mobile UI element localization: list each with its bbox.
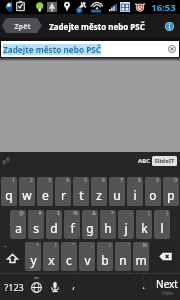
staticText: u [113,187,121,203]
staticText: n [119,252,127,268]
staticText: y [30,252,37,268]
button[interactable]: Zadejte město nebo PSČ [1,41,179,57]
staticText: e [42,187,49,203]
button[interactable]: Zpět [2,18,42,33]
button[interactable]: " [61,242,77,271]
staticText: c [66,252,72,268]
button[interactable]: Shift [1,242,23,271]
staticText: 4 [66,177,69,184]
button[interactable]: 1 [1,177,17,206]
staticText: 7 [120,177,123,184]
staticText: i [133,187,137,203]
staticText: 5 [84,177,87,184]
staticText: % [142,242,147,249]
button[interactable]: Period [136,273,150,300]
staticText: t [79,187,84,203]
button[interactable]: % [133,242,149,271]
staticText: Next [156,277,178,291]
staticText: # [38,210,42,217]
staticText: 0 [174,177,177,184]
staticText: co [34,275,39,280]
staticText: m [135,252,147,268]
button[interactable]: 3 [37,177,53,206]
staticText: s [33,220,39,236]
staticText: 9 [156,177,159,184]
button[interactable]: ) [154,210,170,239]
staticText: d [50,220,58,236]
button[interactable]: Clear text [167,44,177,54]
staticText: 8 [138,177,141,184]
staticText: Zadejte město nebo PSČ [3,44,101,55]
staticText: a [15,220,22,236]
button[interactable]: 0 [163,177,179,206]
button[interactable]: 5 [73,177,89,206]
button[interactable]: 2 [19,177,35,206]
button[interactable]: Comma [65,273,82,300]
staticText: SlideIT [154,157,175,165]
staticText: ' [127,242,129,249]
button[interactable]: Next [152,273,180,300]
button[interactable]: - [118,210,134,239]
button[interactable]: ' [115,242,131,271]
staticText: " [72,242,75,249]
button[interactable]: ! [43,242,59,271]
staticText: ( [148,210,150,217]
staticText: 16:53 [151,1,176,14]
staticText: @ [19,210,24,217]
button[interactable]: $ [46,210,62,239]
button[interactable]: Info [162,19,176,33]
button[interactable]: Backspace [151,242,179,271]
staticText: : [77,274,79,279]
button[interactable]: 7 [109,177,125,206]
staticText: + [36,242,39,249]
button[interactable]: 4 [55,177,71,206]
button[interactable]: Symbols [1,273,26,300]
staticText: - [130,210,132,217]
staticText: g [86,220,94,236]
staticText: ABC [138,157,150,165]
staticText: $ [57,210,60,217]
staticText: . [142,278,145,292]
button[interactable]: % [64,210,80,239]
staticText: q [5,187,13,203]
button[interactable]: * [100,210,116,239]
staticText: x [48,252,55,268]
staticText: Zpět [14,21,31,31]
button[interactable]: # [28,210,44,239]
staticText: ?123 [4,281,24,293]
staticText: o [149,187,157,203]
staticText: Hide [162,290,173,297]
button[interactable]: Voice input [46,273,63,300]
button[interactable]: Change language [28,273,44,300]
button[interactable]: + [25,242,41,271]
staticText: * [111,210,114,217]
button[interactable]: ( [136,210,152,239]
staticText: 1 [12,177,15,184]
staticText: ) [166,210,168,217]
button[interactable]: 9 [145,177,161,206]
staticText: 3 [48,177,51,184]
staticText: h [104,220,112,236]
staticText: l [160,220,164,236]
button[interactable]: , [79,242,95,271]
staticText: , [72,278,75,292]
button[interactable]: Space [84,273,134,300]
staticText: % [73,210,78,217]
staticText: ! [55,242,57,249]
staticText: / [109,242,111,249]
button[interactable]: / [97,242,113,271]
staticText: Zadejte město nebo PSČ [49,21,145,32]
staticText: b [101,252,109,268]
button[interactable]: & [82,210,98,239]
staticText: ; [142,274,144,279]
button[interactable]: 6 [91,177,107,206]
staticText: v [84,252,91,268]
staticText: p [167,187,175,203]
staticText: 6 [102,177,105,184]
staticText: w [22,187,32,203]
staticText: r [61,187,66,203]
staticText: , [91,242,93,249]
staticText: z [96,187,102,203]
button[interactable]: @ [10,210,26,239]
button[interactable]: 8 [127,177,143,206]
